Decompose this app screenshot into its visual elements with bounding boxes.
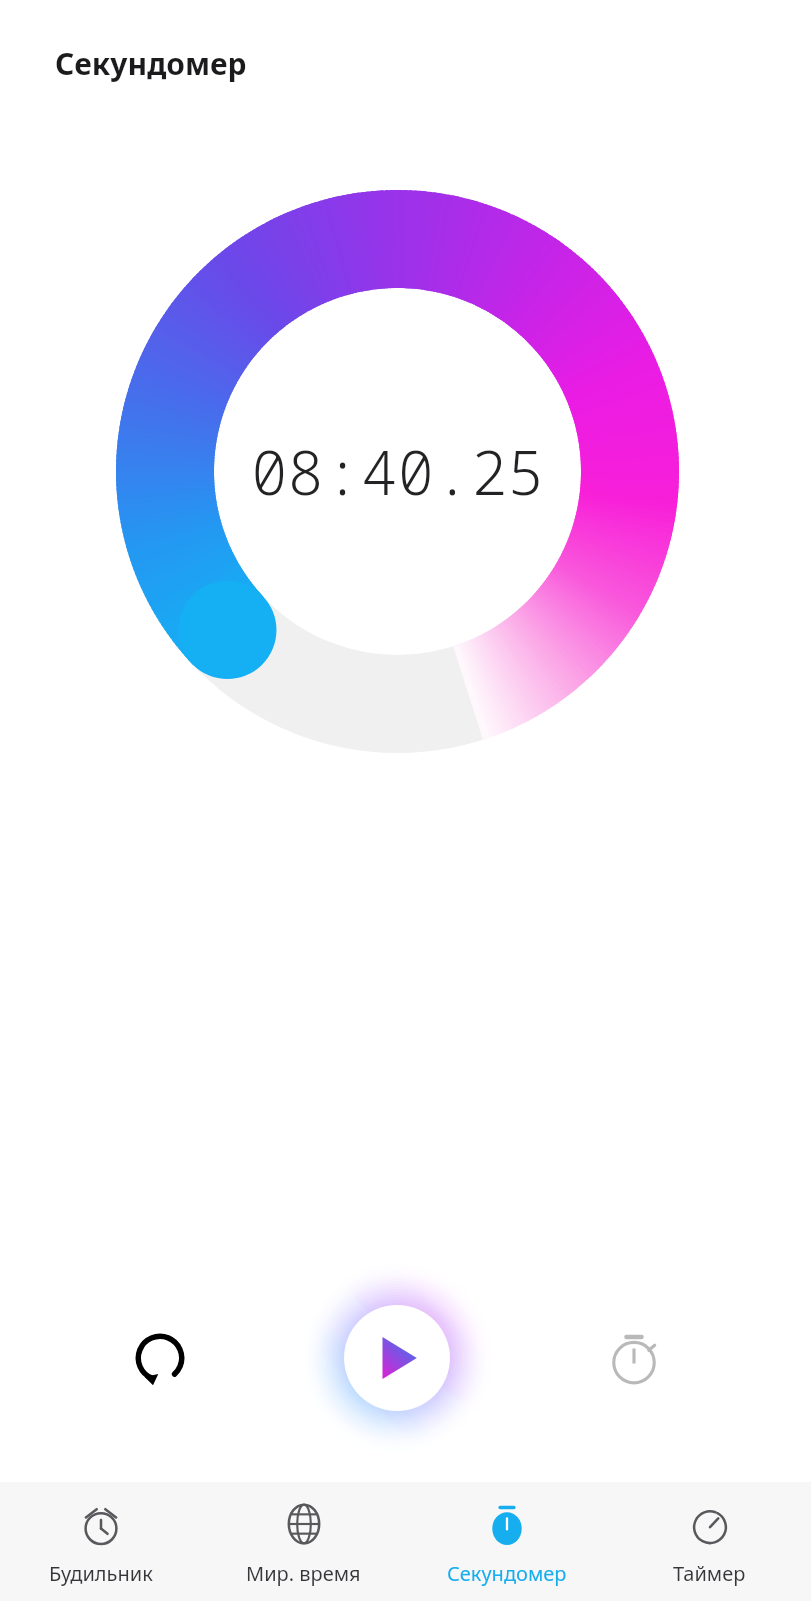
button[interactable]: Таймер: [608, 1482, 811, 1601]
staticText: Таймер: [673, 1560, 746, 1587]
staticText: Мир. время: [246, 1560, 361, 1587]
staticText: Секундомер: [447, 1560, 567, 1587]
button[interactable]: Будильник: [0, 1482, 202, 1601]
button[interactable]: Секундомер: [405, 1482, 608, 1601]
staticText: Секундомер: [55, 43, 247, 84]
staticText: Будильник: [49, 1560, 153, 1587]
button[interactable]: Reset: [108, 1306, 212, 1410]
button[interactable]: Lap: [582, 1306, 686, 1410]
button[interactable]: Start: [344, 1305, 450, 1411]
button[interactable]: Мир. время: [202, 1482, 405, 1601]
staticText: 08:40.25: [251, 430, 544, 513]
